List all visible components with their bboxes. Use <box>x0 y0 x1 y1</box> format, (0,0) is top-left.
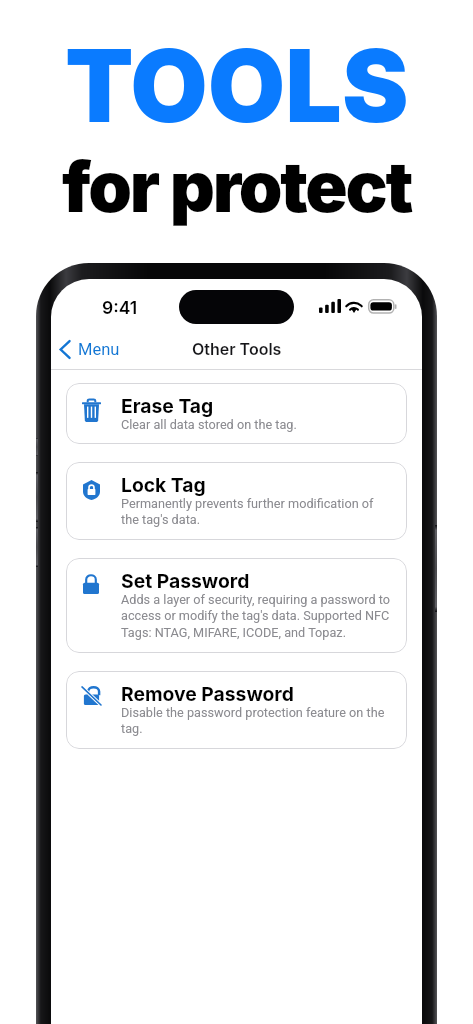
button[interactable]: Remove Password <box>66 671 407 749</box>
button[interactable]: Set Password <box>66 558 407 653</box>
staticText: Set Password <box>121 569 250 592</box>
staticText: 9:41 <box>102 297 138 318</box>
other: Wi-Fi <box>344 299 364 313</box>
button[interactable]: Lock Tag <box>66 462 407 540</box>
staticText: Erase Tag <box>121 394 214 417</box>
staticText: Adds a layer of security, requiring a pa… <box>121 592 391 641</box>
staticText: Remove Password <box>121 682 294 705</box>
button[interactable]: Menu <box>51 336 130 363</box>
button[interactable]: Erase Tag <box>66 383 407 444</box>
staticText: TOOLS <box>65 25 409 146</box>
other: Lock Tag <box>83 480 100 500</box>
staticText: for protect <box>62 144 412 229</box>
staticText: Disable the password protection feature … <box>121 705 391 737</box>
other: Battery <box>368 299 395 313</box>
other: Cellular signal <box>319 299 341 313</box>
staticText: Other Tools <box>192 339 282 358</box>
other: Erase Tag <box>82 399 101 422</box>
staticText: Clear all data stored on the tag. <box>121 417 297 432</box>
staticText: Permanently prevents further modificatio… <box>121 496 391 528</box>
other: Set Password <box>83 573 99 594</box>
staticText: Menu <box>78 340 120 359</box>
other: Remove Password <box>82 684 101 705</box>
staticText: Lock Tag <box>121 473 206 496</box>
